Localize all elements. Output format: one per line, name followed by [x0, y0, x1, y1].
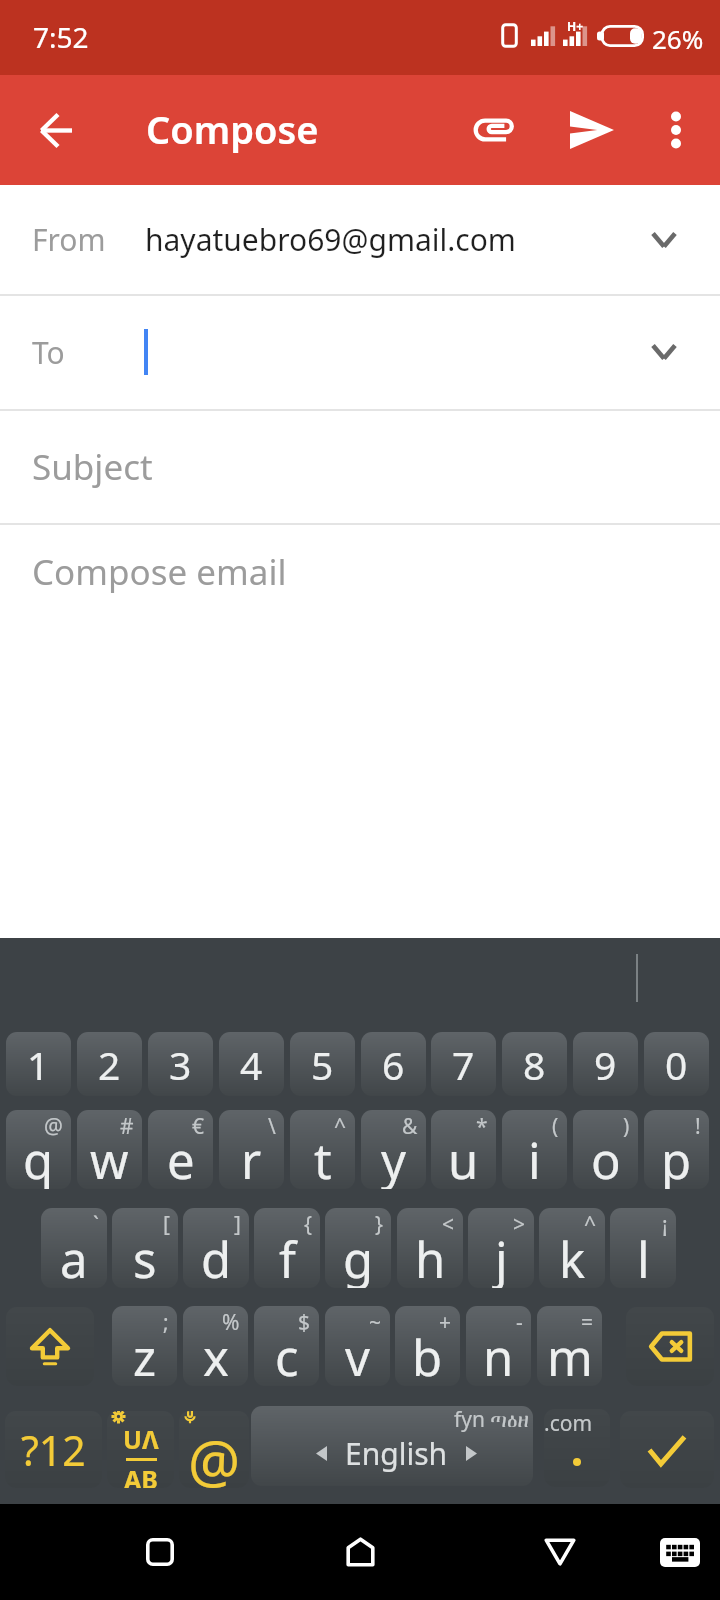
button[interactable]: *	[431, 1110, 496, 1189]
button[interactable]: =	[537, 1306, 602, 1386]
staticText: o	[591, 1127, 621, 1189]
button[interactable]: +	[395, 1306, 460, 1386]
staticText: 4	[240, 1038, 263, 1091]
button[interactable]: Backspace	[626, 1307, 714, 1386]
button[interactable]: 8	[502, 1032, 567, 1096]
button[interactable]: &	[361, 1110, 426, 1189]
staticText: English	[345, 1433, 448, 1474]
staticText: (	[552, 1112, 559, 1141]
staticText: fyn ጣዕዘ	[454, 1406, 529, 1434]
button[interactable]: 3	[148, 1032, 213, 1096]
staticText: q	[23, 1127, 54, 1189]
staticText: AB	[124, 1462, 158, 1488]
button[interactable]: {	[254, 1208, 320, 1288]
staticText: f	[279, 1226, 296, 1288]
button[interactable]: Attach file	[448, 82, 544, 178]
staticText: r	[241, 1127, 262, 1189]
button[interactable]: Recent apps	[110, 1504, 210, 1600]
staticText: 26%	[652, 21, 704, 56]
button[interactable]: 0	[644, 1032, 709, 1096]
staticText: y	[381, 1127, 406, 1189]
staticText: =	[581, 1308, 594, 1337]
button[interactable]: %	[183, 1306, 248, 1386]
button[interactable]: ;	[112, 1306, 177, 1386]
staticText: ;	[163, 1308, 169, 1337]
button[interactable]: Shift	[6, 1307, 94, 1386]
staticText: hayatuebro69@gmail.com	[145, 219, 516, 260]
staticText: u	[448, 1127, 479, 1189]
button[interactable]: -	[466, 1306, 531, 1386]
staticText: b	[412, 1324, 443, 1386]
staticText: p	[661, 1127, 692, 1189]
button[interactable]: ¡	[610, 1208, 676, 1288]
staticText: a	[60, 1226, 88, 1288]
staticText: 2	[98, 1038, 121, 1091]
button[interactable]: }	[325, 1208, 391, 1288]
button[interactable]: Back	[510, 1504, 610, 1600]
button[interactable]: 7	[431, 1032, 496, 1096]
button[interactable]: `	[41, 1208, 107, 1288]
button[interactable]: Subject	[0, 411, 720, 523]
staticText: ^	[584, 1210, 597, 1239]
button[interactable]: 9	[573, 1032, 638, 1096]
staticText: d	[201, 1226, 232, 1288]
staticText: v	[345, 1324, 370, 1386]
button[interactable]: Switch language	[107, 1411, 174, 1488]
staticText: Subject	[32, 443, 153, 491]
staticText: !	[695, 1112, 701, 1141]
button[interactable]: ^	[290, 1110, 355, 1189]
staticText: h	[415, 1226, 446, 1288]
button[interactable]: #	[77, 1110, 142, 1189]
button[interactable]: More options	[632, 86, 720, 174]
staticText: &	[402, 1112, 418, 1141]
staticText: ¡	[662, 1210, 668, 1239]
staticText: H+	[567, 18, 584, 34]
button[interactable]: 5	[290, 1032, 355, 1096]
button[interactable]: Space	[251, 1406, 533, 1486]
button[interactable]: Navigate up	[14, 88, 98, 172]
staticText: -	[516, 1308, 523, 1337]
button[interactable]: $	[254, 1306, 319, 1386]
button[interactable]: (	[502, 1110, 567, 1189]
button[interactable]: @	[6, 1110, 71, 1189]
button[interactable]: \	[219, 1110, 284, 1189]
button[interactable]: From	[0, 185, 720, 294]
button[interactable]: !	[644, 1110, 709, 1189]
staticText: n	[483, 1324, 514, 1386]
button[interactable]: Enter	[620, 1411, 714, 1488]
staticText: $	[298, 1308, 311, 1337]
staticText: 8	[523, 1038, 546, 1091]
staticText: c	[275, 1324, 299, 1386]
button[interactable]: Period	[544, 1409, 610, 1487]
staticText: >	[513, 1210, 526, 1239]
button[interactable]: Compose email	[0, 525, 720, 938]
button[interactable]: Home	[310, 1504, 410, 1600]
button[interactable]: To	[0, 295, 720, 409]
button[interactable]: 2	[77, 1032, 142, 1096]
button[interactable]: Symbols	[5, 1411, 102, 1488]
button[interactable]: 4	[219, 1032, 284, 1096]
staticText: 0	[665, 1038, 688, 1091]
button[interactable]: Send	[544, 82, 640, 178]
staticText: 7:52	[33, 18, 89, 56]
button[interactable]: >	[468, 1208, 534, 1288]
button[interactable]: ^	[539, 1208, 605, 1288]
staticText: Compose email	[32, 548, 287, 596]
button[interactable]: Hide keyboard	[630, 1504, 720, 1600]
staticText: 1	[27, 1038, 50, 1091]
button[interactable]: Voice input	[179, 1411, 249, 1488]
button[interactable]: 6	[361, 1032, 426, 1096]
button[interactable]: ]	[183, 1208, 249, 1288]
button[interactable]: €	[148, 1110, 213, 1189]
staticText: {	[304, 1210, 312, 1239]
staticText: <	[442, 1210, 455, 1239]
button[interactable]: ~	[325, 1306, 390, 1386]
button[interactable]: <	[397, 1208, 463, 1288]
button[interactable]: )	[573, 1110, 638, 1189]
staticText: UΛ	[123, 1422, 159, 1456]
staticText: }	[375, 1210, 383, 1239]
button[interactable]: 1	[6, 1032, 71, 1096]
staticText: m	[547, 1324, 593, 1386]
button[interactable]: [	[112, 1208, 178, 1288]
staticText: ]	[234, 1210, 241, 1239]
